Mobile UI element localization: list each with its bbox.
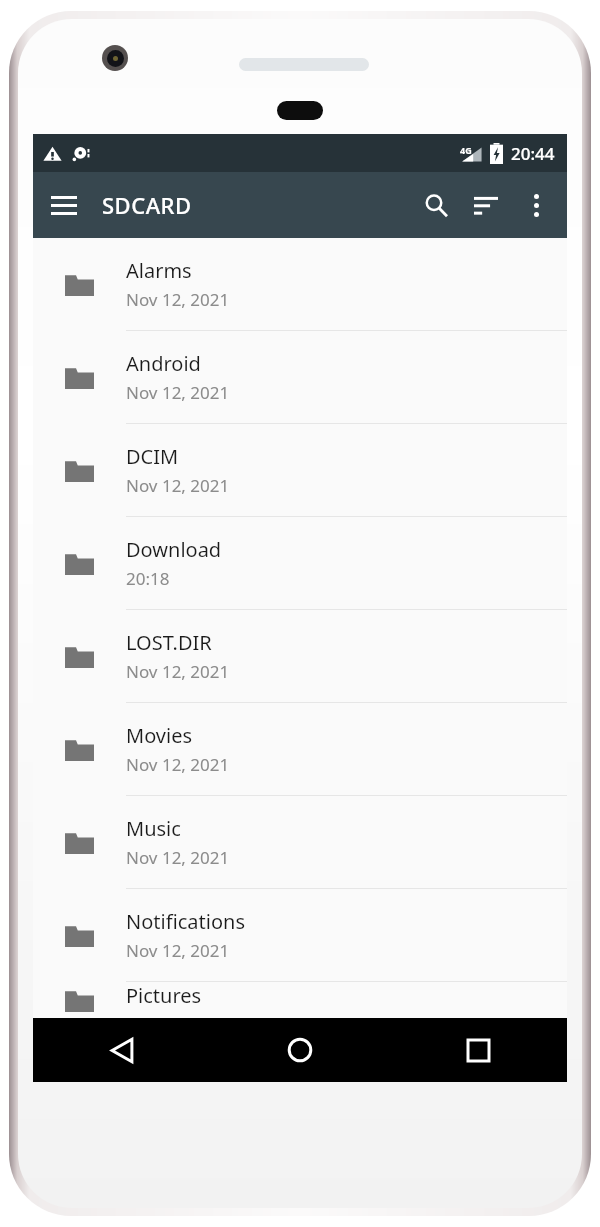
button[interactable]: Notifications: [33, 889, 567, 981]
staticText: 20:44: [511, 142, 555, 165]
staticText: Music: [126, 815, 181, 842]
staticText: SDCARD: [102, 190, 192, 220]
button[interactable]: Download: [33, 517, 567, 609]
staticText: Alarms: [126, 257, 192, 284]
button[interactable]: Home: [211, 1018, 389, 1082]
staticText: Nov 12, 2021: [126, 753, 230, 776]
button[interactable]: Movies: [33, 703, 567, 795]
staticText: DCIM: [126, 443, 179, 470]
button[interactable]: Open navigation drawer: [39, 180, 89, 230]
button[interactable]: More options: [511, 180, 561, 230]
button[interactable]: Recent apps: [389, 1018, 567, 1082]
staticText: Nov 12, 2021: [126, 660, 230, 683]
staticText: Nov 12, 2021: [126, 846, 230, 869]
button[interactable]: DCIM: [33, 424, 567, 516]
button[interactable]: Back: [33, 1018, 211, 1082]
staticText: Movies: [126, 722, 193, 749]
staticText: Pictures: [126, 982, 202, 1009]
staticText: 20:18: [126, 567, 170, 590]
button[interactable]: Android: [33, 331, 567, 423]
button[interactable]: Search: [411, 180, 461, 230]
button[interactable]: Pictures: [33, 982, 567, 1018]
button[interactable]: Alarms: [33, 238, 567, 330]
staticText: Nov 12, 2021: [126, 939, 230, 962]
button[interactable]: LOST.DIR: [33, 610, 567, 702]
staticText: Nov 12, 2021: [126, 288, 230, 311]
staticText: Nov 12, 2021: [126, 474, 230, 497]
staticText: Android: [126, 350, 201, 377]
button[interactable]: Sort: [461, 180, 511, 230]
staticText: LOST.DIR: [126, 629, 212, 656]
button[interactable]: Music: [33, 796, 567, 888]
staticText: Notifications: [126, 908, 245, 935]
staticText: Nov 12, 2021: [126, 381, 230, 404]
staticText: 4G: [460, 144, 472, 156]
staticText: Download: [126, 536, 222, 563]
